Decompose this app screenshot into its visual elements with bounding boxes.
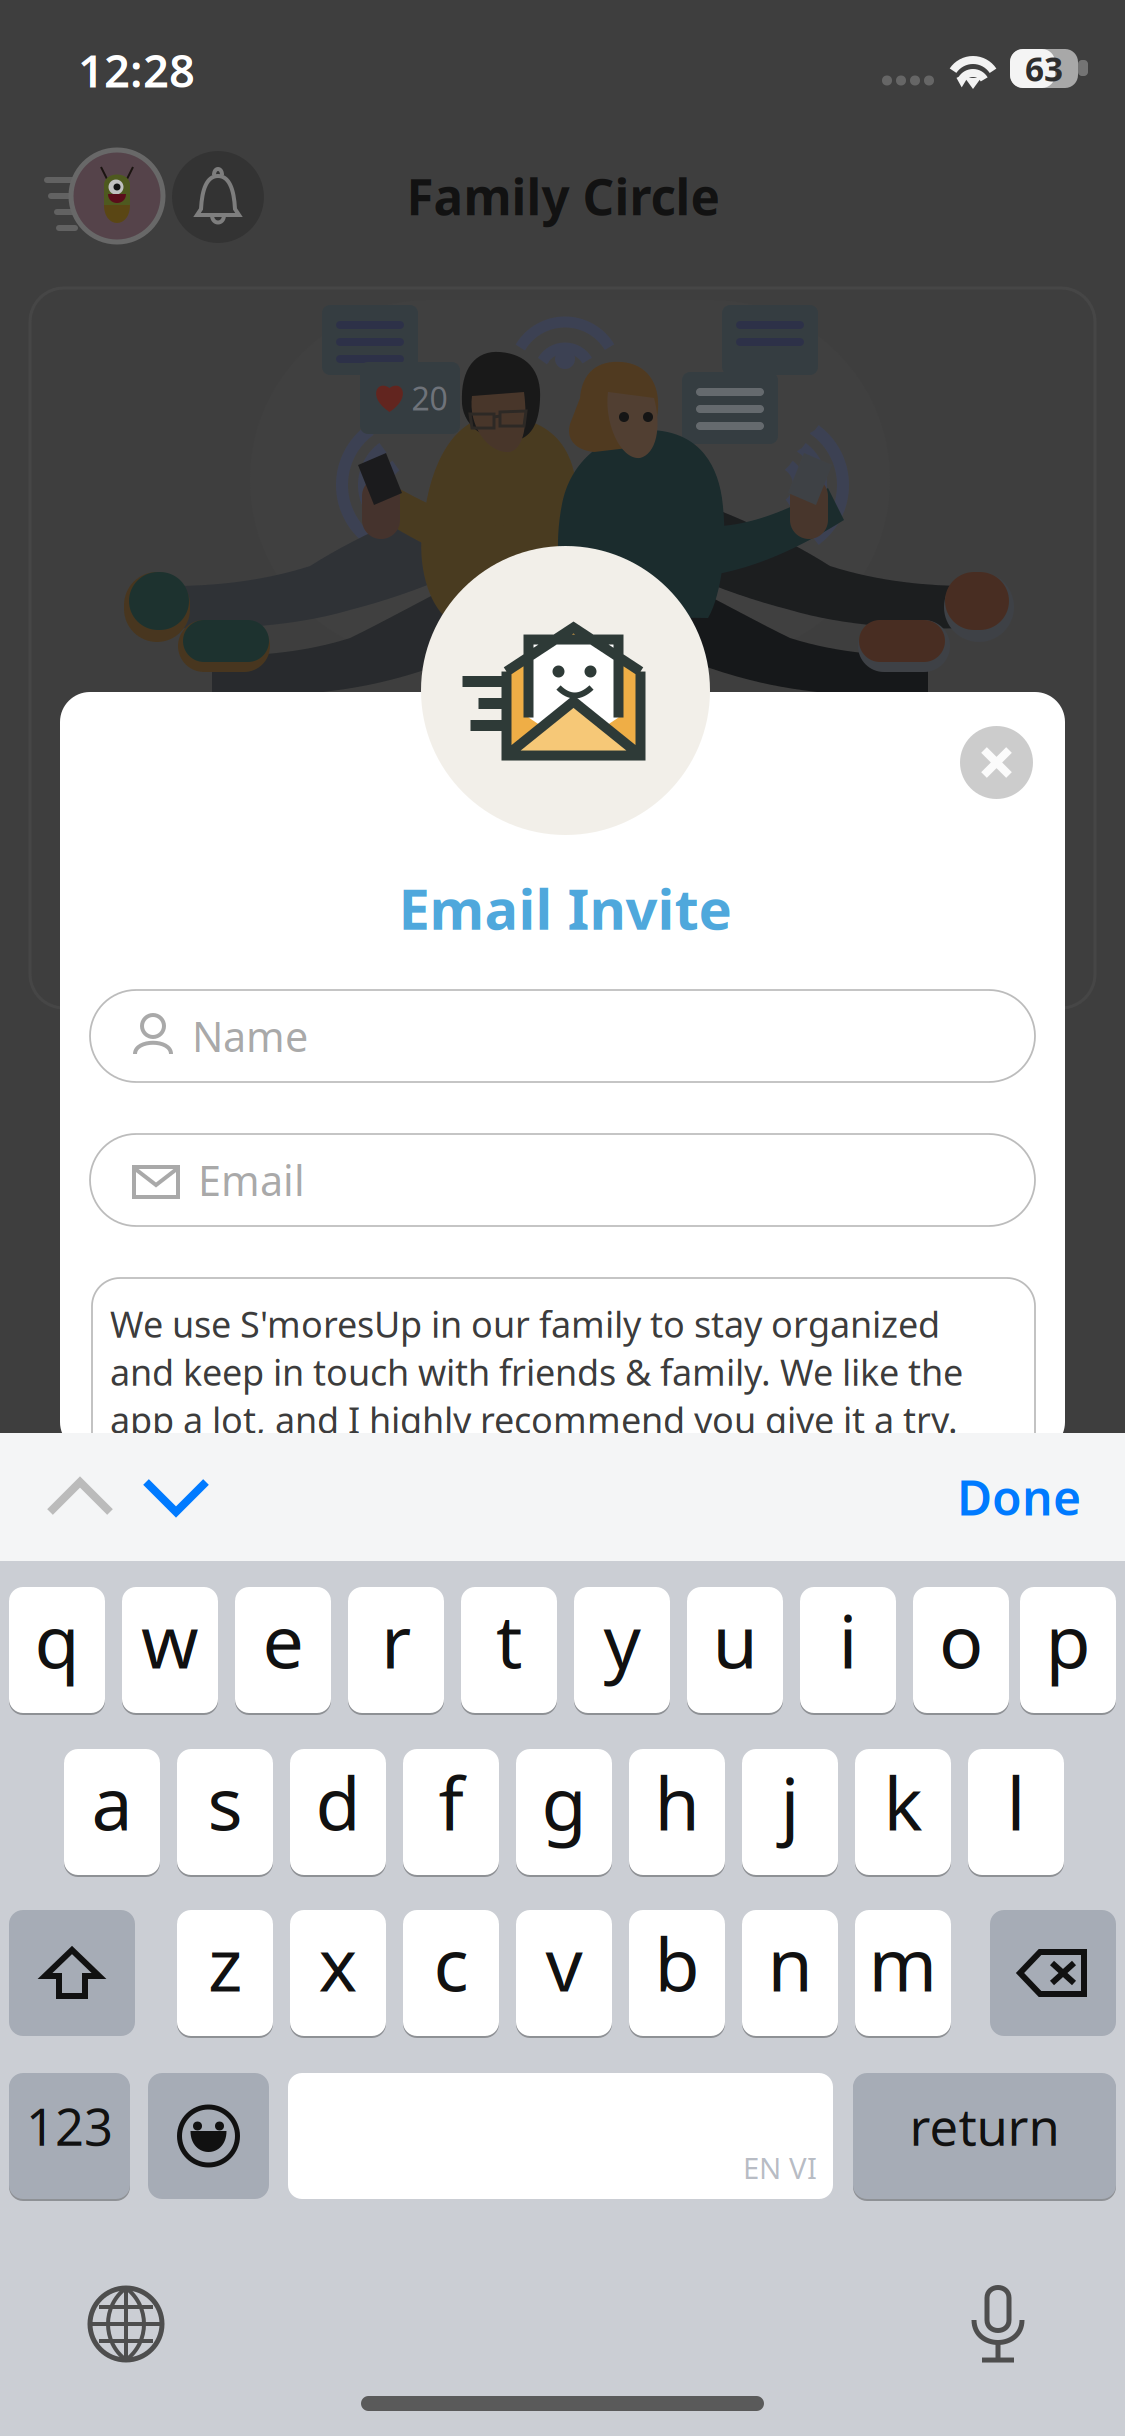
- staticText: Name: [192, 1009, 308, 1063]
- button[interactable]: n: [742, 1910, 838, 2036]
- button[interactable]: Next field: [128, 1433, 224, 1561]
- staticText: 63: [1025, 46, 1063, 91]
- button[interactable]: return: [853, 2073, 1116, 2199]
- staticText: y: [603, 1591, 640, 1689]
- staticText: j: [780, 1753, 799, 1851]
- button[interactable]: c: [403, 1910, 499, 2036]
- staticText: p: [1045, 1591, 1090, 1689]
- button[interactable]: a: [64, 1749, 160, 1875]
- button[interactable]: Name: [90, 990, 1035, 1082]
- button[interactable]: b: [629, 1910, 725, 2036]
- button[interactable]: o: [913, 1587, 1009, 1713]
- staticText: i: [838, 1591, 857, 1689]
- button[interactable]: r: [348, 1587, 444, 1713]
- button[interactable]: d: [290, 1749, 386, 1875]
- staticText: v: [545, 1914, 582, 2012]
- button[interactable]: Delete: [990, 1910, 1116, 2036]
- staticText: We use S'moresUp in our family to stay o…: [110, 1300, 963, 1443]
- staticText: x: [318, 1914, 357, 2012]
- staticText: w: [141, 1591, 199, 1689]
- staticText: l: [1006, 1753, 1025, 1851]
- button[interactable]: w: [122, 1587, 218, 1713]
- staticText: t: [496, 1591, 522, 1689]
- button[interactable]: Done: [957, 1433, 1081, 1561]
- button[interactable]: Notifications: [172, 151, 264, 243]
- button[interactable]: Close: [960, 726, 1033, 799]
- staticText: a: [91, 1753, 132, 1851]
- button[interactable]: f: [403, 1749, 499, 1875]
- button[interactable]: Dictate: [960, 2282, 1036, 2364]
- button[interactable]: q: [9, 1587, 105, 1713]
- button[interactable]: Space: [288, 2073, 833, 2199]
- staticText: EN VI: [743, 2148, 817, 2187]
- button[interactable]: Emoji: [148, 2073, 269, 2199]
- staticText: m: [868, 1914, 937, 2012]
- staticText: e: [262, 1591, 303, 1689]
- staticText: Done: [957, 1465, 1081, 1529]
- button[interactable]: Email: [90, 1134, 1035, 1226]
- button[interactable]: p: [1020, 1587, 1116, 1713]
- staticText: u: [712, 1591, 757, 1689]
- button[interactable]: z: [177, 1910, 273, 2036]
- button[interactable]: v: [516, 1910, 612, 2036]
- staticText: c: [433, 1914, 468, 2012]
- button[interactable]: t: [461, 1587, 557, 1713]
- button[interactable]: Switch keyboard: [88, 2286, 164, 2362]
- button[interactable]: m: [855, 1910, 951, 2036]
- staticText: o: [939, 1591, 983, 1689]
- staticText: 12:28: [78, 40, 195, 100]
- button[interactable]: j: [742, 1749, 838, 1875]
- button[interactable]: e: [235, 1587, 331, 1713]
- button[interactable]: g: [516, 1749, 612, 1875]
- button[interactable]: h: [629, 1749, 725, 1875]
- staticText: z: [208, 1914, 242, 2012]
- button[interactable]: l: [968, 1749, 1064, 1875]
- staticText: 123: [26, 2092, 113, 2160]
- staticText: 20: [411, 377, 447, 419]
- staticText: Family Circle: [406, 163, 719, 229]
- staticText: q: [34, 1591, 79, 1689]
- button[interactable]: Profile: [71, 150, 163, 242]
- button[interactable]: i: [800, 1587, 896, 1713]
- staticText: s: [207, 1753, 242, 1851]
- staticText: r: [381, 1591, 411, 1689]
- staticText: g: [541, 1753, 586, 1851]
- button[interactable]: k: [855, 1749, 951, 1875]
- staticText: b: [654, 1914, 699, 2012]
- staticText: d: [315, 1753, 360, 1851]
- staticText: return: [909, 2092, 1059, 2160]
- staticText: n: [767, 1914, 812, 2012]
- button[interactable]: 123: [9, 2073, 130, 2199]
- button[interactable]: s: [177, 1749, 273, 1875]
- button[interactable]: x: [290, 1910, 386, 2036]
- staticText: h: [654, 1753, 699, 1851]
- staticText: Email Invite: [398, 871, 731, 945]
- button[interactable]: y: [574, 1587, 670, 1713]
- staticText: Email: [198, 1153, 305, 1207]
- staticText: f: [438, 1753, 463, 1851]
- button[interactable]: Shift: [9, 1910, 135, 2036]
- button[interactable]: u: [687, 1587, 783, 1713]
- staticText: k: [883, 1753, 922, 1851]
- button[interactable]: Previous field: [32, 1433, 128, 1561]
